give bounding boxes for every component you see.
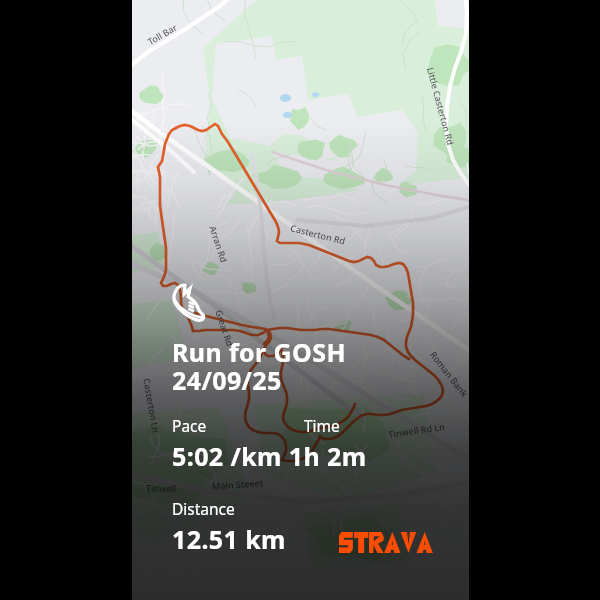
staticText: Roman Bank xyxy=(428,349,469,399)
staticText: Distance xyxy=(172,498,235,519)
staticText: Casterton Rd xyxy=(289,221,347,247)
staticText: 12.51 km xyxy=(172,522,286,556)
staticText: Pace xyxy=(172,415,207,436)
staticText: Tinwell Rd Ln xyxy=(387,420,445,440)
staticText: Little Casterton Rd xyxy=(425,66,457,146)
staticText: Great Rd xyxy=(213,308,237,348)
other: Running activity xyxy=(169,281,211,323)
staticText: Casterton Ln xyxy=(141,377,163,435)
staticText: Main Steeet xyxy=(212,476,264,492)
staticText: Arran Rd xyxy=(207,224,231,264)
staticText: Toll Bar xyxy=(145,21,179,47)
staticText: Time xyxy=(304,415,340,436)
staticText: 5:02 /km 1h 2m xyxy=(172,439,367,473)
staticText: 24/09/25 xyxy=(172,363,282,397)
staticText: Run for GOSH xyxy=(172,335,346,369)
staticText: Tinwell xyxy=(146,482,177,494)
